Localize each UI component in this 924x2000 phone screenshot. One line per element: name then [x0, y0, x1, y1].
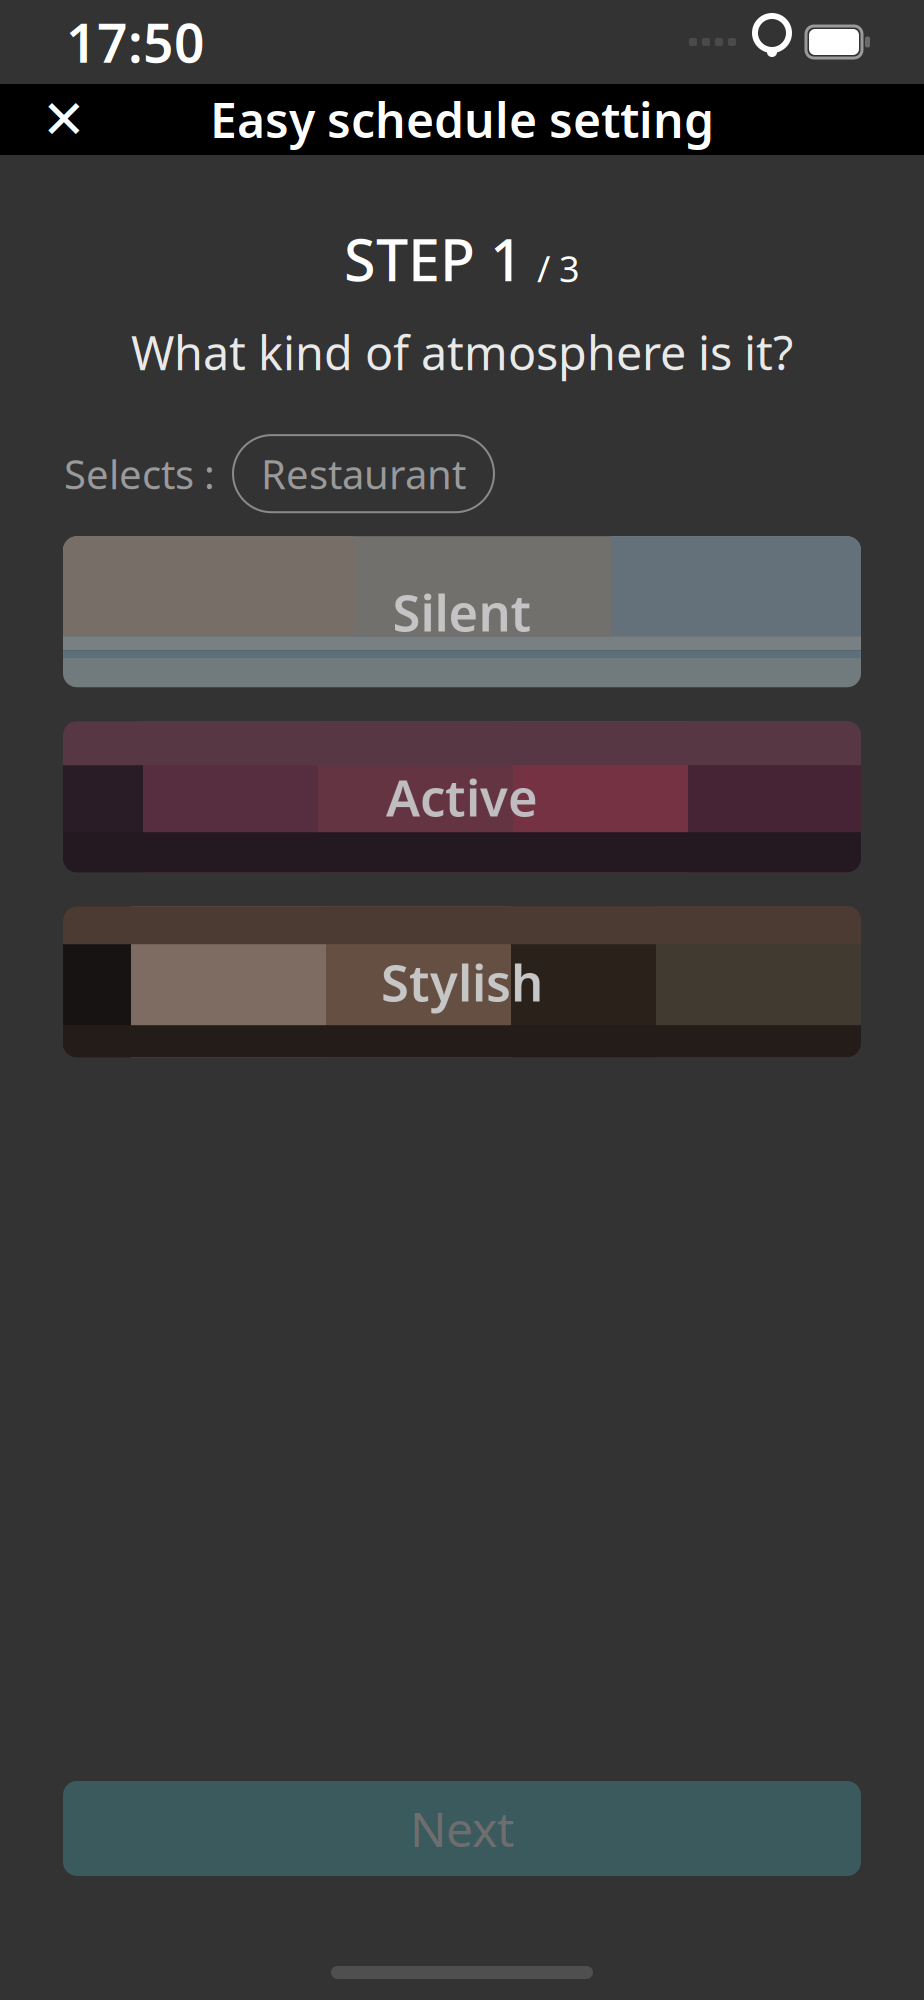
staticText: Silent — [392, 578, 531, 645]
staticText: Stylish — [381, 948, 543, 1015]
button[interactable]: Close — [18, 84, 110, 155]
button[interactable]: Silent — [63, 536, 861, 687]
staticText: ✕ — [41, 89, 86, 150]
staticText: 17:50 — [66, 7, 205, 77]
staticText: Restaurant — [261, 447, 466, 500]
staticText: What kind of atmosphere is it? — [131, 321, 793, 383]
staticText: STEP 1 — [344, 221, 523, 297]
button[interactable]: Restaurant — [233, 435, 494, 512]
staticText: / 3 — [537, 244, 580, 292]
staticText: Active — [386, 763, 538, 830]
button[interactable]: Stylish — [63, 906, 861, 1057]
button[interactable]: Next — [63, 1781, 861, 1876]
button[interactable]: Active — [63, 721, 861, 872]
staticText: Selects : — [64, 447, 215, 500]
staticText: Next — [410, 1797, 514, 1860]
staticText: Easy schedule setting — [210, 88, 714, 151]
